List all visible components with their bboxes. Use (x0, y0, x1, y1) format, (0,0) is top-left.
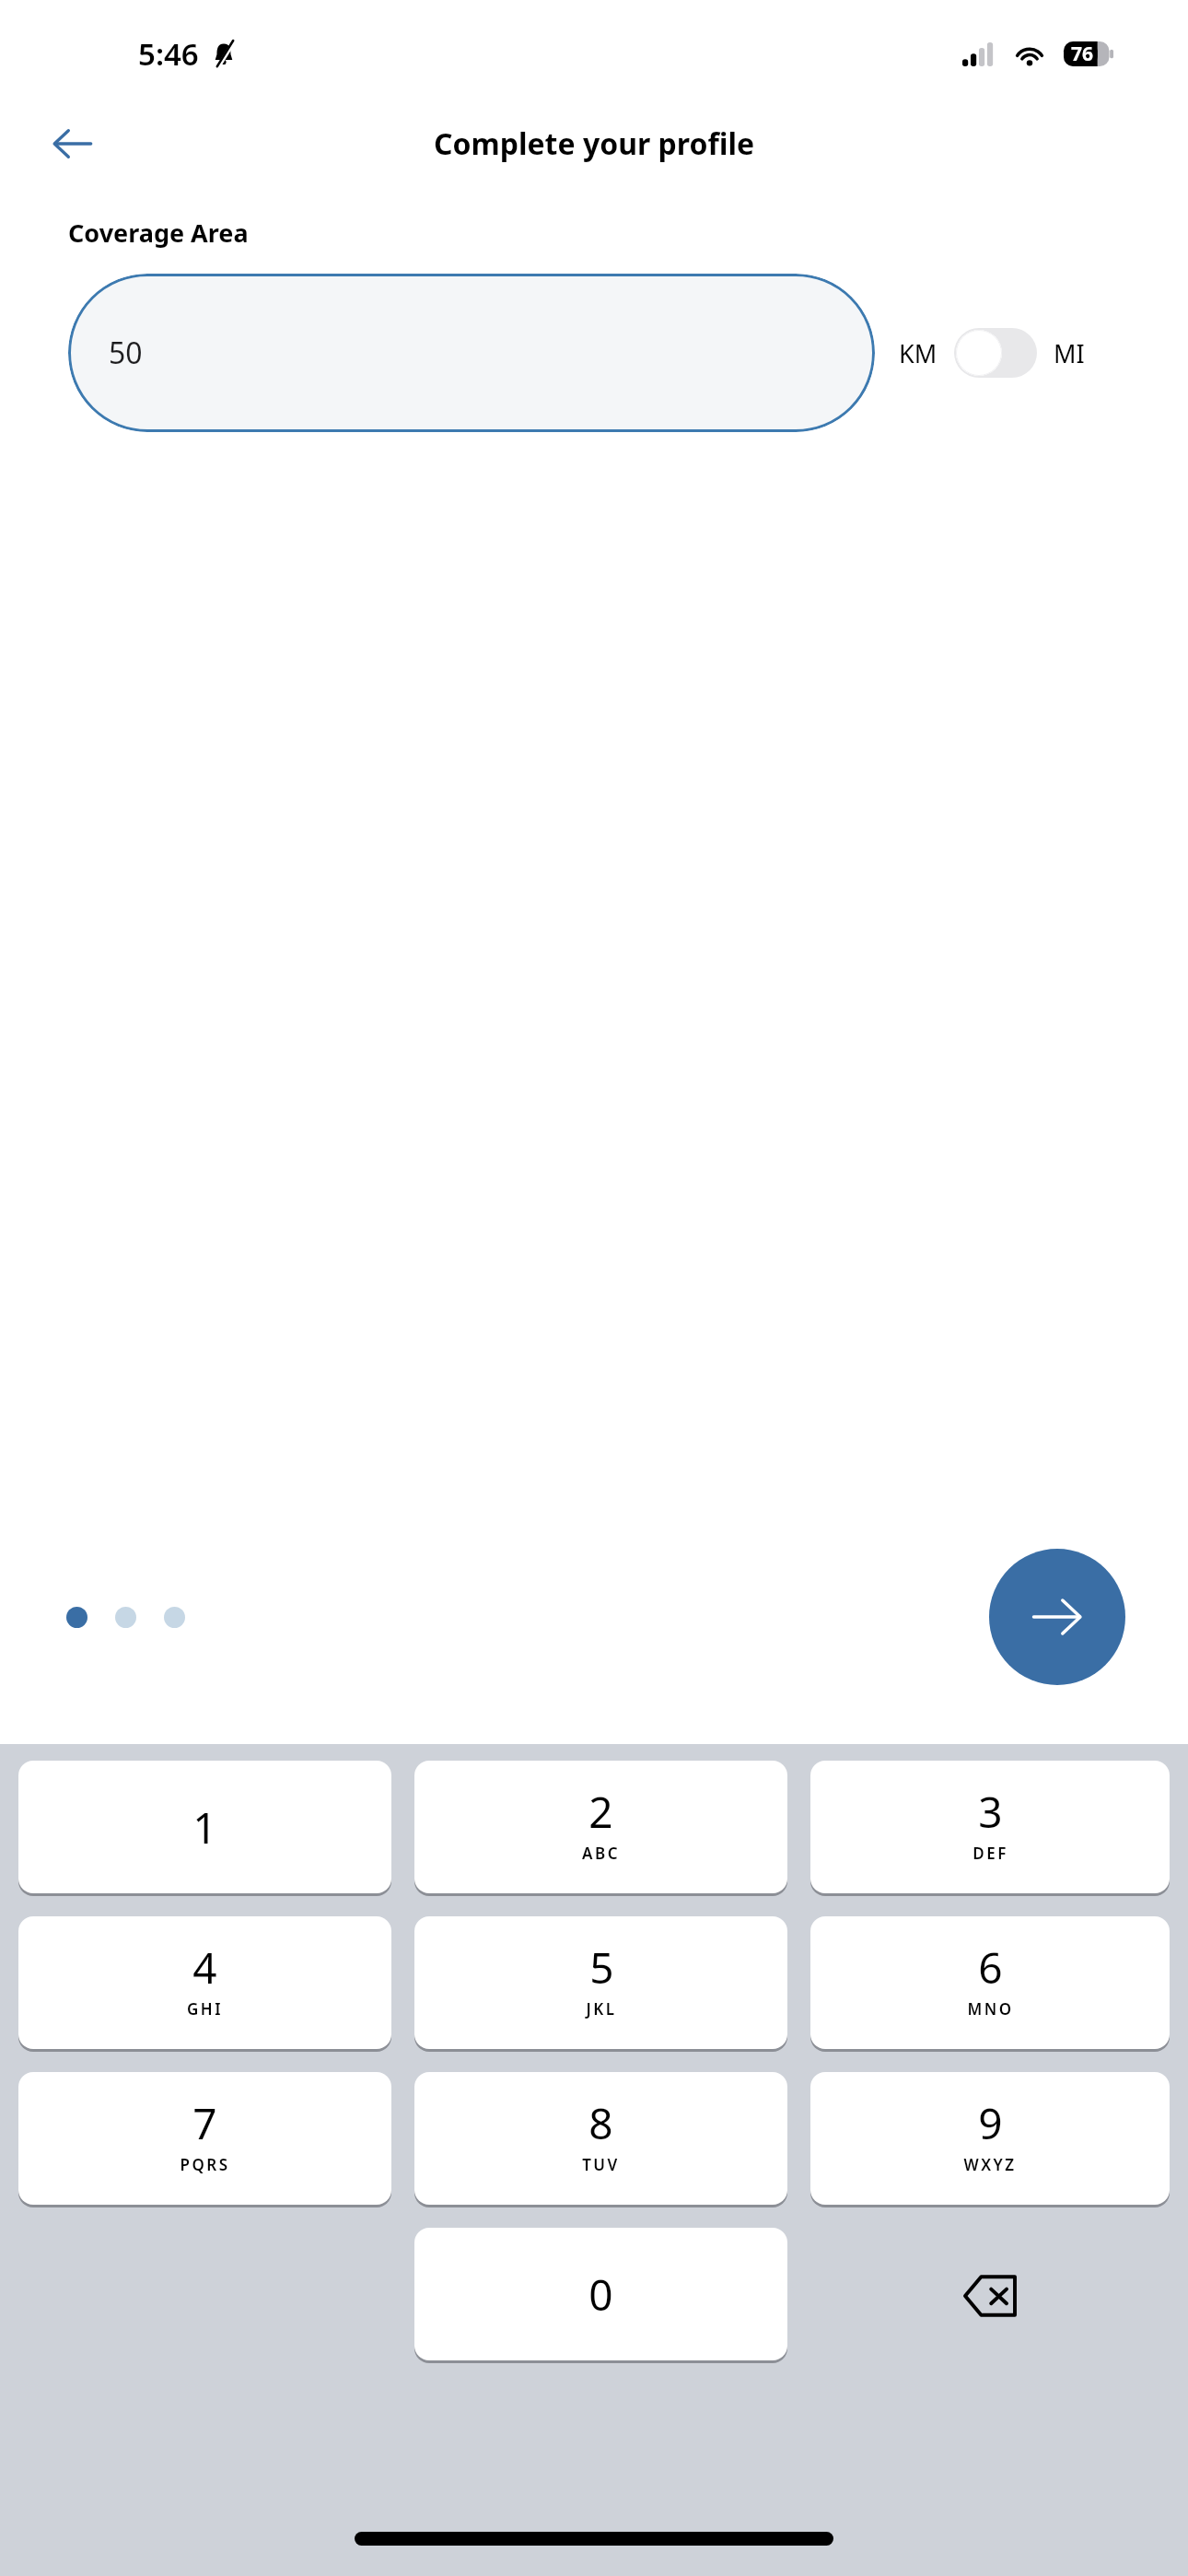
button[interactable]: 2 (414, 1761, 787, 1893)
staticText: 1 (192, 1798, 217, 1856)
staticText: GHI (187, 1998, 223, 2020)
button[interactable]: 0 (414, 2228, 787, 2360)
staticText: 4 (192, 1938, 217, 1996)
button[interactable]: 7 (18, 2072, 391, 2205)
staticText: 76 (1071, 41, 1094, 67)
staticText: 0 (588, 2266, 613, 2324)
button[interactable]: 9 (810, 2072, 1170, 2205)
button[interactable]: 5 (414, 1916, 787, 2049)
staticText: Complete your profile (434, 123, 755, 164)
staticText: 5:46 (138, 33, 199, 75)
staticText: 9 (978, 2094, 1003, 2152)
staticText: 2 (588, 1783, 613, 1841)
button[interactable]: Toggle kilometres or miles (954, 328, 1037, 378)
button[interactable]: Delete (810, 2228, 1170, 2363)
staticText: DEF (973, 1843, 1008, 1864)
staticText: Coverage Area (68, 216, 249, 250)
staticText: 7 (192, 2094, 217, 2152)
staticText: 3 (978, 1783, 1003, 1841)
button[interactable]: Page 2 (115, 1607, 136, 1628)
staticText: 50 (109, 333, 143, 373)
staticText: 6 (978, 1938, 1003, 1996)
staticText: TUV (582, 2154, 620, 2175)
staticText: JKL (586, 1998, 617, 2020)
button[interactable]: Page 3 (164, 1607, 185, 1628)
staticText: 5 (589, 1938, 614, 1996)
button[interactable]: Page 1 (66, 1607, 87, 1628)
button[interactable]: 6 (810, 1916, 1170, 2049)
button[interactable]: 1 (18, 1761, 391, 1893)
button[interactable]: 8 (414, 2072, 787, 2205)
staticText: PQRS (180, 2154, 230, 2175)
staticText: MI (1054, 336, 1085, 370)
button[interactable]: Next (989, 1549, 1125, 1685)
button[interactable]: 3 (810, 1761, 1170, 1893)
staticText: MNO (967, 1998, 1014, 2020)
staticText: ABC (582, 1843, 620, 1864)
staticText: KM (899, 336, 938, 370)
staticText: 8 (588, 2094, 613, 2152)
staticText: WXYZ (963, 2154, 1017, 2175)
button[interactable]: 4 (18, 1916, 391, 2049)
button[interactable]: 50 (68, 274, 875, 432)
button[interactable]: Back (46, 118, 98, 170)
